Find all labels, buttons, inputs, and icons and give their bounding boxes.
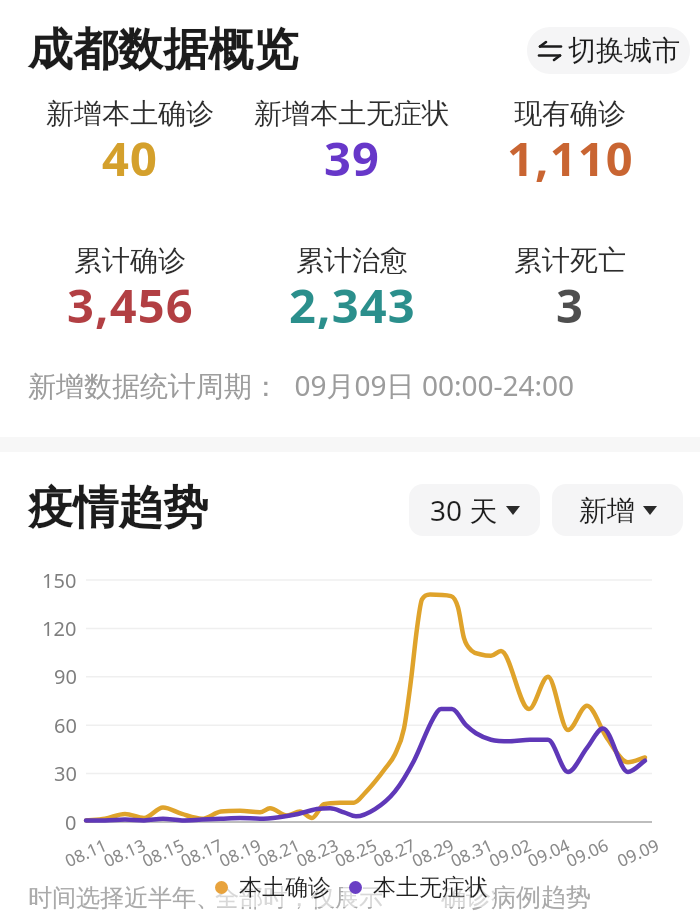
staticText: 疫情趋势	[28, 480, 208, 537]
staticText: 3	[556, 273, 585, 337]
button[interactable]: 30 天	[409, 484, 540, 536]
button[interactable]: 切换城市	[527, 27, 690, 74]
button[interactable]: 本土无症状	[343, 868, 494, 907]
button[interactable]: 本土确诊	[209, 868, 337, 907]
staticText: 2,343	[289, 273, 416, 337]
staticText: 时间选择近半年、	[28, 883, 220, 913]
staticText: 本土无症状	[373, 873, 488, 902]
staticText: 1,110	[507, 126, 634, 190]
staticText: 新增本土确诊	[46, 96, 214, 131]
staticText: 新增	[579, 493, 635, 528]
staticText: 确诊病例趋势	[441, 882, 591, 913]
staticText: 本土确诊	[239, 873, 331, 902]
staticText: 累计死亡	[514, 243, 626, 278]
staticText: 40	[102, 126, 159, 190]
staticText: 累计确诊	[74, 243, 186, 278]
staticText: 现有确诊	[514, 96, 626, 131]
staticText: 成都数据概览	[28, 22, 298, 79]
staticText: 全部时，仅展示	[215, 883, 383, 913]
staticText: 切换城市	[568, 33, 680, 68]
staticText: 新增本土无症状	[254, 96, 450, 131]
staticText: 30 天	[430, 491, 498, 529]
staticText: 3,456	[67, 273, 194, 337]
button[interactable]: 新增	[552, 484, 683, 536]
staticText: 累计治愈	[296, 243, 408, 278]
staticText: 39	[324, 126, 381, 190]
staticText: 新增数据统计周期： 09月09日 00:00-24:00	[28, 366, 575, 404]
